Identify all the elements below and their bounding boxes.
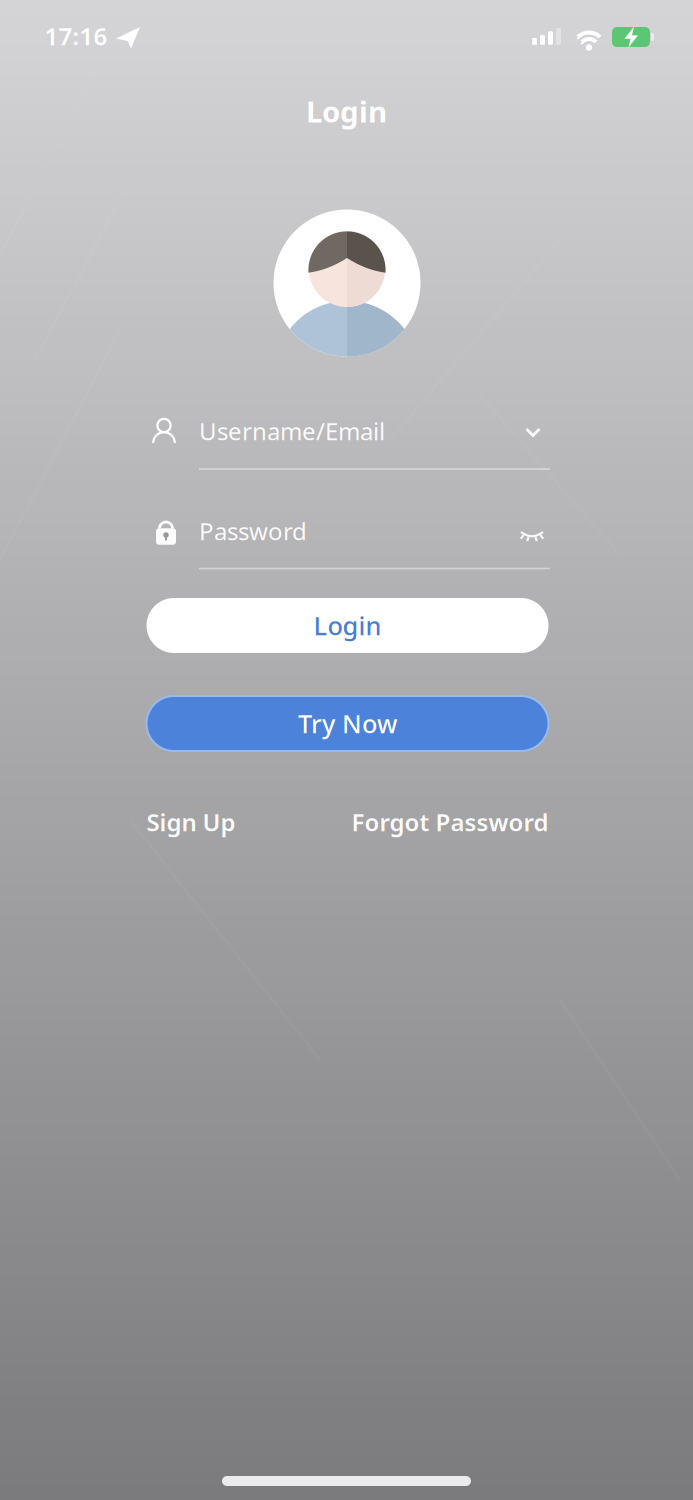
button[interactable]: Sign Up — [146, 806, 235, 838]
button[interactable]: Try Now — [146, 696, 548, 751]
button[interactable]: Forgot Password — [351, 806, 548, 838]
button[interactable]: Password — [146, 507, 550, 571]
staticText: Password — [199, 515, 307, 547]
staticText: Username/Email — [199, 415, 385, 447]
staticText: 17:16 — [44, 20, 107, 52]
staticText: Sign Up — [146, 806, 235, 838]
button[interactable]: Username/Email — [146, 408, 550, 472]
staticText: Forgot Password — [351, 806, 548, 838]
staticText: Login — [306, 91, 387, 130]
staticText: Login — [313, 609, 381, 642]
button[interactable]: Login — [146, 598, 548, 653]
staticText: Try Now — [298, 707, 397, 740]
